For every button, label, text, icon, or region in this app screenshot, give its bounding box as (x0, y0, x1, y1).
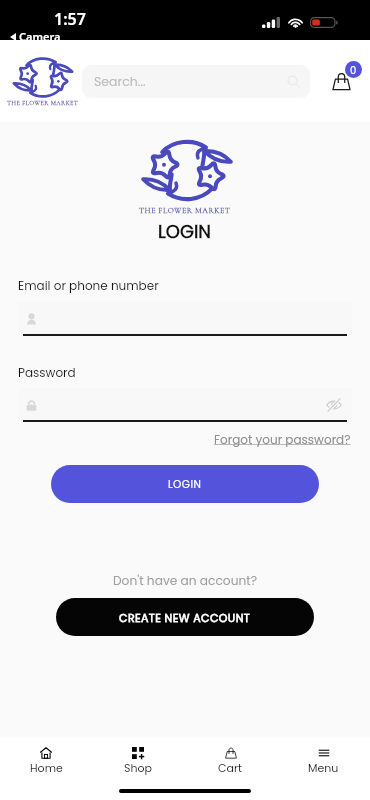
button[interactable]: Cart (184, 737, 277, 785)
staticText: CREATE NEW ACCOUNT (119, 610, 251, 625)
staticText: LOGIN (168, 477, 202, 492)
staticText: THE FLOWER MARKET (139, 206, 231, 216)
staticText: Camera (19, 29, 61, 44)
staticText: 0 (350, 63, 357, 77)
staticText: Shop (124, 760, 152, 775)
button[interactable]: CREATE NEW ACCOUNT (56, 598, 314, 636)
staticText: Menu (308, 760, 339, 775)
staticText: Forgot your password? (214, 431, 351, 448)
staticText: Home (30, 760, 63, 775)
button[interactable]: Cart (326, 56, 366, 104)
button[interactable]: LOGIN (51, 465, 319, 503)
staticText: Don't have an account? (113, 572, 258, 589)
button[interactable]: Menu (277, 737, 370, 785)
staticText: THE FLOWER MARKET (7, 99, 79, 107)
button[interactable]: Shop (92, 737, 184, 785)
button[interactable]: Search... (82, 65, 310, 98)
button[interactable]: Home (0, 737, 92, 785)
staticText: Search... (94, 73, 146, 90)
staticText: 1:57 (54, 8, 86, 30)
staticText: LOGIN (158, 219, 212, 244)
button[interactable]: Forgot your password? (214, 431, 351, 448)
other: Back to Camera (10, 33, 16, 41)
staticText: Cart (218, 760, 243, 775)
staticText: Email or phone number (18, 277, 159, 294)
staticText: Password (18, 364, 76, 381)
